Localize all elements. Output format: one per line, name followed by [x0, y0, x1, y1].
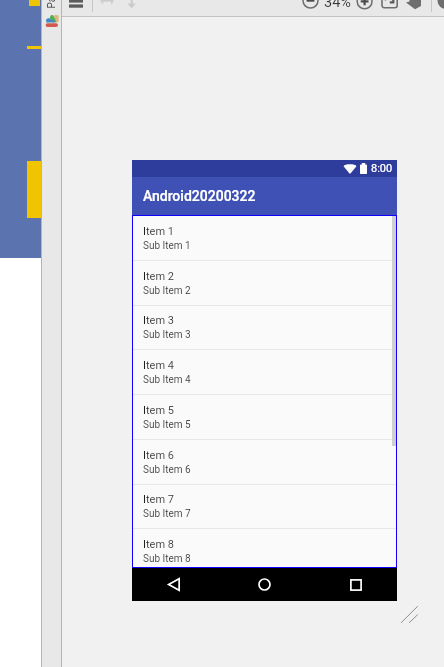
staticText: Item 2: [143, 270, 174, 283]
button[interactable]: Item 8: [132, 529, 397, 574]
button[interactable]: Recents: [341, 573, 370, 596]
staticText: Item 4: [143, 359, 174, 372]
button[interactable]: Back: [159, 573, 188, 596]
staticText: Item 5: [143, 404, 174, 417]
staticText: Sub Item 3: [143, 329, 191, 341]
staticText: Item 8: [143, 538, 174, 551]
button[interactable]: Fit to screen: [379, 0, 399, 16]
staticText: Item 3: [143, 314, 174, 327]
button[interactable]: Android20200322: [132, 177, 397, 215]
button[interactable]: Zoom out: [301, 0, 319, 16]
button[interactable]: Palette: [42, 0, 61, 30]
button[interactable]: Item 4: [132, 350, 397, 395]
staticText: Item 7: [143, 493, 174, 506]
button[interactable]: Item 6: [132, 440, 397, 485]
button[interactable]: Zoom in: [351, 0, 369, 16]
staticText: Android20200322: [143, 188, 256, 204]
button[interactable]: Pan: [404, 0, 424, 16]
button[interactable]: Item 5: [132, 395, 397, 440]
staticText: Palette: [45, 0, 57, 8]
button[interactable]: Home: [250, 573, 279, 596]
staticText: Sub Item 5: [143, 419, 191, 431]
staticText: Sub Item 1: [143, 240, 191, 252]
staticText: Item 1: [143, 225, 174, 238]
staticText: 8:00: [371, 162, 393, 175]
staticText: 34%: [324, 0, 351, 11]
button[interactable]: Download: [124, 0, 142, 16]
staticText: Sub Item 8: [143, 553, 191, 565]
button[interactable]: Item 3: [132, 305, 397, 350]
staticText: Sub Item 2: [143, 285, 191, 297]
button[interactable]: Item 2: [132, 261, 397, 306]
button[interactable]: Item 1: [132, 216, 397, 261]
staticText: Item 6: [143, 449, 174, 462]
button[interactable]: Menu: [66, 0, 87, 16]
button[interactable]: Item 7: [132, 484, 397, 529]
staticText: Sub Item 4: [143, 374, 191, 386]
staticText: Sub Item 7: [143, 508, 191, 520]
button[interactable]: Undo: [97, 0, 120, 16]
staticText: Sub Item 6: [143, 464, 191, 476]
